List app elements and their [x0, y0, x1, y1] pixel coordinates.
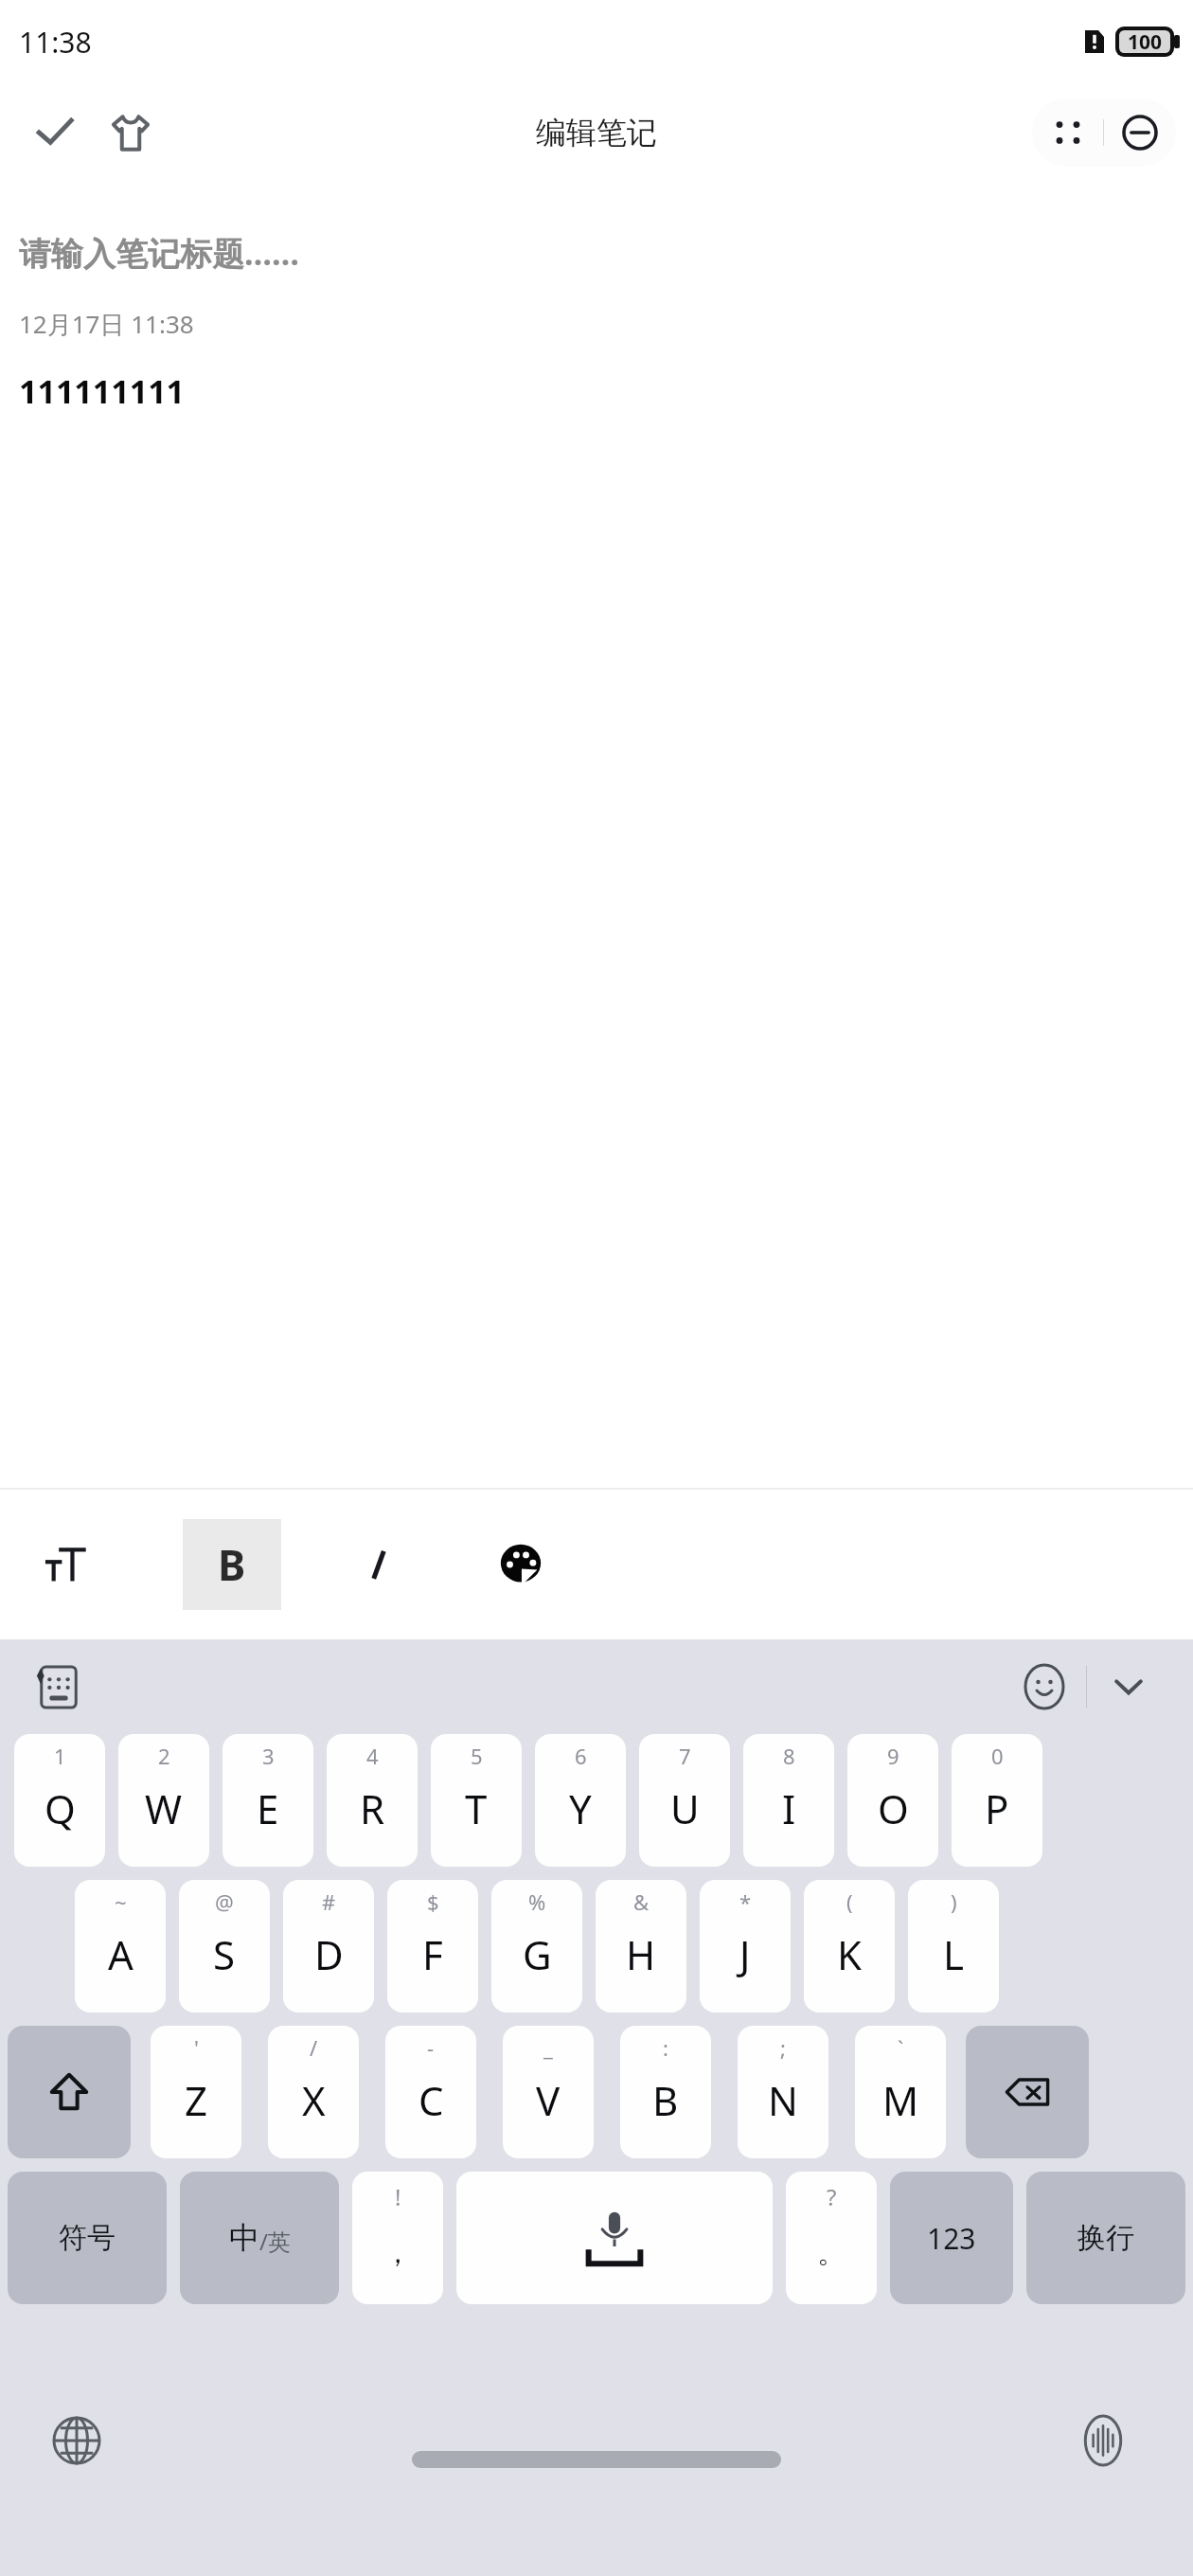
button[interactable]: Window controls	[1032, 98, 1176, 167]
staticText: 4	[366, 1742, 379, 1770]
staticText: L	[943, 1927, 965, 1981]
staticText: N	[768, 2073, 798, 2127]
button[interactable]: &	[596, 1880, 686, 2012]
staticText: _	[543, 2033, 553, 2062]
staticText: '	[194, 2033, 199, 2062]
staticText: R	[360, 1781, 385, 1835]
button[interactable]: 换行	[1026, 2172, 1185, 2304]
button[interactable]: (	[804, 1880, 895, 2012]
button[interactable]: 8	[743, 1734, 834, 1867]
button[interactable]: 123	[890, 2172, 1013, 2304]
button[interactable]: -	[385, 2026, 476, 2158]
staticText: *	[739, 1887, 752, 1916]
staticText: W	[145, 1781, 183, 1835]
button[interactable]: Change language	[36, 2400, 117, 2481]
button[interactable]: 0	[952, 1734, 1042, 1867]
button[interactable]: #	[283, 1880, 374, 2012]
button[interactable]: Hide keyboard	[1087, 1645, 1170, 1728]
staticText: Z	[185, 2073, 208, 2127]
staticText: 7	[679, 1742, 691, 1770]
staticText: 中	[229, 2219, 259, 2257]
button[interactable]: Italic	[339, 1525, 418, 1604]
staticText: :	[663, 2033, 668, 2062]
button[interactable]: Color	[481, 1525, 561, 1604]
staticText: 8	[783, 1742, 795, 1770]
staticText: 6	[575, 1742, 587, 1770]
button[interactable]: Backspace	[966, 2026, 1089, 2158]
button[interactable]: Voice input	[1062, 2400, 1144, 2481]
staticText: T	[465, 1781, 488, 1835]
staticText: I	[782, 1781, 796, 1835]
button[interactable]: 1	[14, 1734, 105, 1867]
button[interactable]: ;	[738, 2026, 828, 2158]
button[interactable]: 中	[180, 2172, 339, 2304]
staticText: G	[523, 1927, 552, 1981]
staticText: E	[257, 1781, 279, 1835]
staticText: #	[322, 1887, 336, 1916]
staticText: 请输入笔记标题……	[19, 231, 300, 275]
button[interactable]: %	[491, 1880, 582, 2012]
staticText: )	[951, 1887, 957, 1916]
staticText: 12月17日 11:38	[19, 307, 194, 341]
staticText: @	[215, 1887, 234, 1916]
button[interactable]: 7	[639, 1734, 730, 1867]
button[interactable]: `	[855, 2026, 946, 2158]
button[interactable]: /	[268, 2026, 359, 2158]
button[interactable]: 符号	[8, 2172, 167, 2304]
button[interactable]: ?	[786, 2172, 877, 2304]
staticText: /英	[259, 2226, 291, 2257]
staticText: 111111111	[19, 369, 186, 413]
staticText: 3	[262, 1742, 275, 1770]
button[interactable]: :	[620, 2026, 711, 2158]
button[interactable]: Bold	[183, 1519, 281, 1610]
staticText: ~	[115, 1887, 127, 1916]
button[interactable]: Text size	[27, 1525, 106, 1604]
staticText: 编辑笔记	[536, 114, 657, 152]
button[interactable]: $	[387, 1880, 478, 2012]
staticText: ?	[827, 2181, 837, 2212]
staticText: 1	[54, 1742, 66, 1770]
button[interactable]: Emoji	[1003, 1645, 1086, 1728]
button[interactable]: ~	[75, 1880, 166, 2012]
staticText: 。	[817, 2235, 846, 2271]
staticText: !	[395, 2181, 401, 2212]
staticText: 2	[158, 1742, 170, 1770]
button[interactable]: '	[151, 2026, 241, 2158]
staticText: 换行	[1077, 2220, 1134, 2256]
button[interactable]: 4	[327, 1734, 418, 1867]
button[interactable]: 9	[847, 1734, 938, 1867]
staticText: -	[427, 2033, 435, 2062]
staticText: H	[626, 1927, 656, 1981]
button[interactable]: Space	[456, 2172, 773, 2304]
staticText: F	[422, 1927, 443, 1981]
button[interactable]: @	[179, 1880, 270, 2012]
staticText: B	[652, 2073, 679, 2127]
button[interactable]: _	[503, 2026, 594, 2158]
staticText: 100	[1128, 28, 1163, 56]
button[interactable]: *	[700, 1880, 791, 2012]
staticText: C	[418, 2073, 444, 2127]
button[interactable]: 2	[118, 1734, 209, 1867]
button[interactable]: 5	[431, 1734, 522, 1867]
staticText: U	[670, 1781, 700, 1835]
staticText: V	[536, 2073, 561, 2127]
staticText: D	[314, 1927, 344, 1981]
button[interactable]: Style	[97, 98, 165, 167]
button[interactable]: Shift	[8, 2026, 131, 2158]
button[interactable]: )	[908, 1880, 999, 2012]
button[interactable]: !	[352, 2172, 443, 2304]
staticText: 0	[991, 1742, 1004, 1770]
button[interactable]: AI keyboard	[17, 1645, 100, 1728]
staticText: 5	[471, 1742, 483, 1770]
staticText: B	[218, 1536, 246, 1593]
staticText: A	[108, 1927, 134, 1981]
staticText: O	[878, 1781, 909, 1835]
staticText: M	[882, 2073, 919, 2127]
staticText: 符号	[59, 2220, 116, 2256]
button[interactable]: 3	[223, 1734, 313, 1867]
staticText: %	[528, 1887, 546, 1916]
staticText: P	[985, 1781, 1009, 1835]
button[interactable]: 6	[535, 1734, 626, 1867]
staticText: &	[633, 1887, 650, 1916]
button[interactable]: Done	[21, 98, 89, 167]
